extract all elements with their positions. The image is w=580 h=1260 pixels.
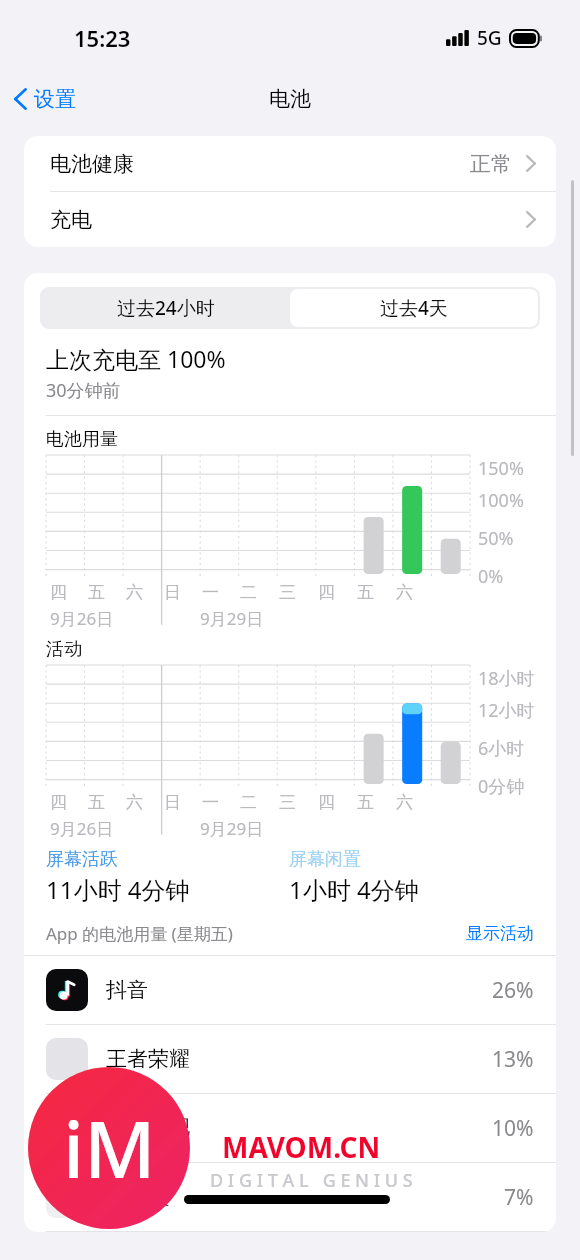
staticText: 12小时 [478, 698, 535, 723]
staticText: 电池 [269, 86, 311, 112]
staticText: 小黑盒 [106, 1184, 169, 1210]
button[interactable]: 抖音 [24, 956, 556, 1025]
staticText: 日 [164, 582, 181, 603]
staticText: 6小时 [478, 736, 525, 761]
button[interactable]: 显示活动 [466, 923, 534, 944]
staticText: 1小时 4分钟 [289, 873, 419, 906]
staticText: 二 [240, 792, 257, 813]
button[interactable]: 设置 [0, 80, 86, 118]
staticText: 9月26日 [50, 817, 114, 840]
staticText: 100% [478, 488, 524, 513]
button[interactable]: 百度贴吧 [24, 1094, 556, 1163]
staticText: iM [63, 1095, 156, 1201]
staticText: MAVOM.CN [222, 1128, 381, 1166]
staticText: 电池用量 [46, 428, 118, 451]
staticText: 7% [504, 1183, 534, 1212]
staticText: 屏幕活跃 [46, 848, 118, 871]
staticText: 充电 [50, 207, 92, 233]
staticText: 13% [492, 1045, 534, 1074]
staticText: 二 [240, 582, 257, 603]
button[interactable]: 王者荣耀 [24, 1025, 556, 1094]
button[interactable]: 电池健康 [24, 136, 556, 192]
staticText: 0% [478, 564, 504, 589]
staticText: 150% [478, 456, 524, 481]
staticText: 王者荣耀 [106, 1046, 492, 1072]
staticText: 10% [492, 1114, 534, 1143]
staticText: 过去4天 [380, 295, 448, 321]
staticText: 三 [279, 792, 296, 813]
staticText: 一 [202, 582, 219, 603]
button[interactable]: 过去4天 [290, 289, 538, 327]
button[interactable]: 小黑盒 [24, 1163, 556, 1232]
staticText: 活动 [46, 638, 82, 661]
staticText: 上次充电至 100% [46, 343, 226, 374]
staticText: D I G I T A L G E N I U S [210, 1168, 413, 1193]
staticText: 设置 [34, 86, 76, 112]
staticText: 过去24小时 [117, 295, 215, 321]
staticText: 11小时 4分钟 [46, 873, 190, 906]
staticText: 30分钟前 [46, 378, 121, 403]
staticText: 15:23 [74, 23, 131, 53]
button[interactable]: 充电 [24, 192, 556, 247]
staticText: 六 [126, 792, 143, 813]
staticText: 六 [396, 792, 413, 813]
staticText: 屏幕闲置 [289, 848, 361, 871]
staticText: 电池健康 [50, 151, 134, 177]
staticText: 六 [396, 582, 413, 603]
staticText: 9月26日 [50, 607, 114, 630]
staticText: 5G [477, 25, 502, 51]
staticText: 0分钟 [478, 774, 525, 799]
staticText: 三 [279, 582, 296, 603]
staticText: 9月29日 [200, 607, 264, 630]
staticText: 四 [50, 582, 67, 603]
staticText: 9月29日 [200, 817, 264, 840]
staticText: 百度贴吧 [106, 1115, 492, 1141]
staticText: 正常 [470, 151, 512, 177]
staticText: 一 [202, 792, 219, 813]
staticText: 五 [357, 792, 374, 813]
staticText: 四 [318, 582, 335, 603]
staticText: 六 [126, 582, 143, 603]
staticText: 五 [357, 582, 374, 603]
staticText: 日 [164, 792, 181, 813]
staticText: 抖音 [106, 977, 492, 1003]
staticText: 50% [478, 526, 514, 551]
staticText: App 的电池用量 (星期五) [46, 922, 233, 945]
staticText: 四 [50, 792, 67, 813]
staticText: 五 [88, 792, 105, 813]
staticText: 显示活动 [466, 923, 534, 944]
staticText: 18小时 [478, 666, 535, 691]
staticText: 26% [492, 976, 534, 1005]
staticText: 四 [318, 792, 335, 813]
staticText: 五 [88, 582, 105, 603]
button[interactable]: 过去24小时 [42, 289, 290, 327]
